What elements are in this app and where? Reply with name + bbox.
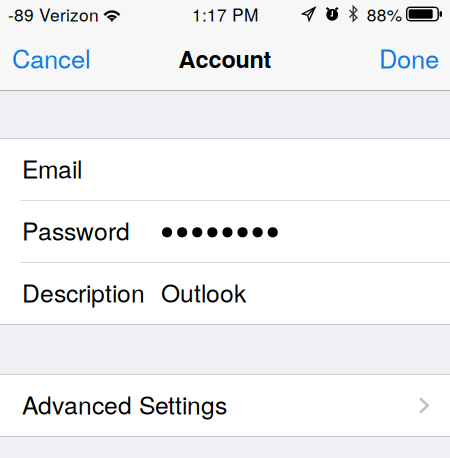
staticText: Account <box>178 42 271 75</box>
staticText: Advanced Settings <box>22 386 227 421</box>
staticText: Password <box>22 212 130 247</box>
staticText: -89 Verizon <box>8 2 99 26</box>
button[interactable]: Cancel <box>0 28 104 90</box>
staticText: 88% <box>367 2 402 26</box>
staticText: 1:17 PM <box>192 2 258 26</box>
button[interactable]: Done <box>366 28 450 90</box>
button[interactable]: Advanced Settings <box>0 375 450 436</box>
staticText: Outlook <box>161 274 246 309</box>
staticText: Done <box>379 39 439 76</box>
staticText: Cancel <box>12 39 91 76</box>
staticText: Description <box>22 274 145 309</box>
staticText: Email <box>22 150 82 185</box>
